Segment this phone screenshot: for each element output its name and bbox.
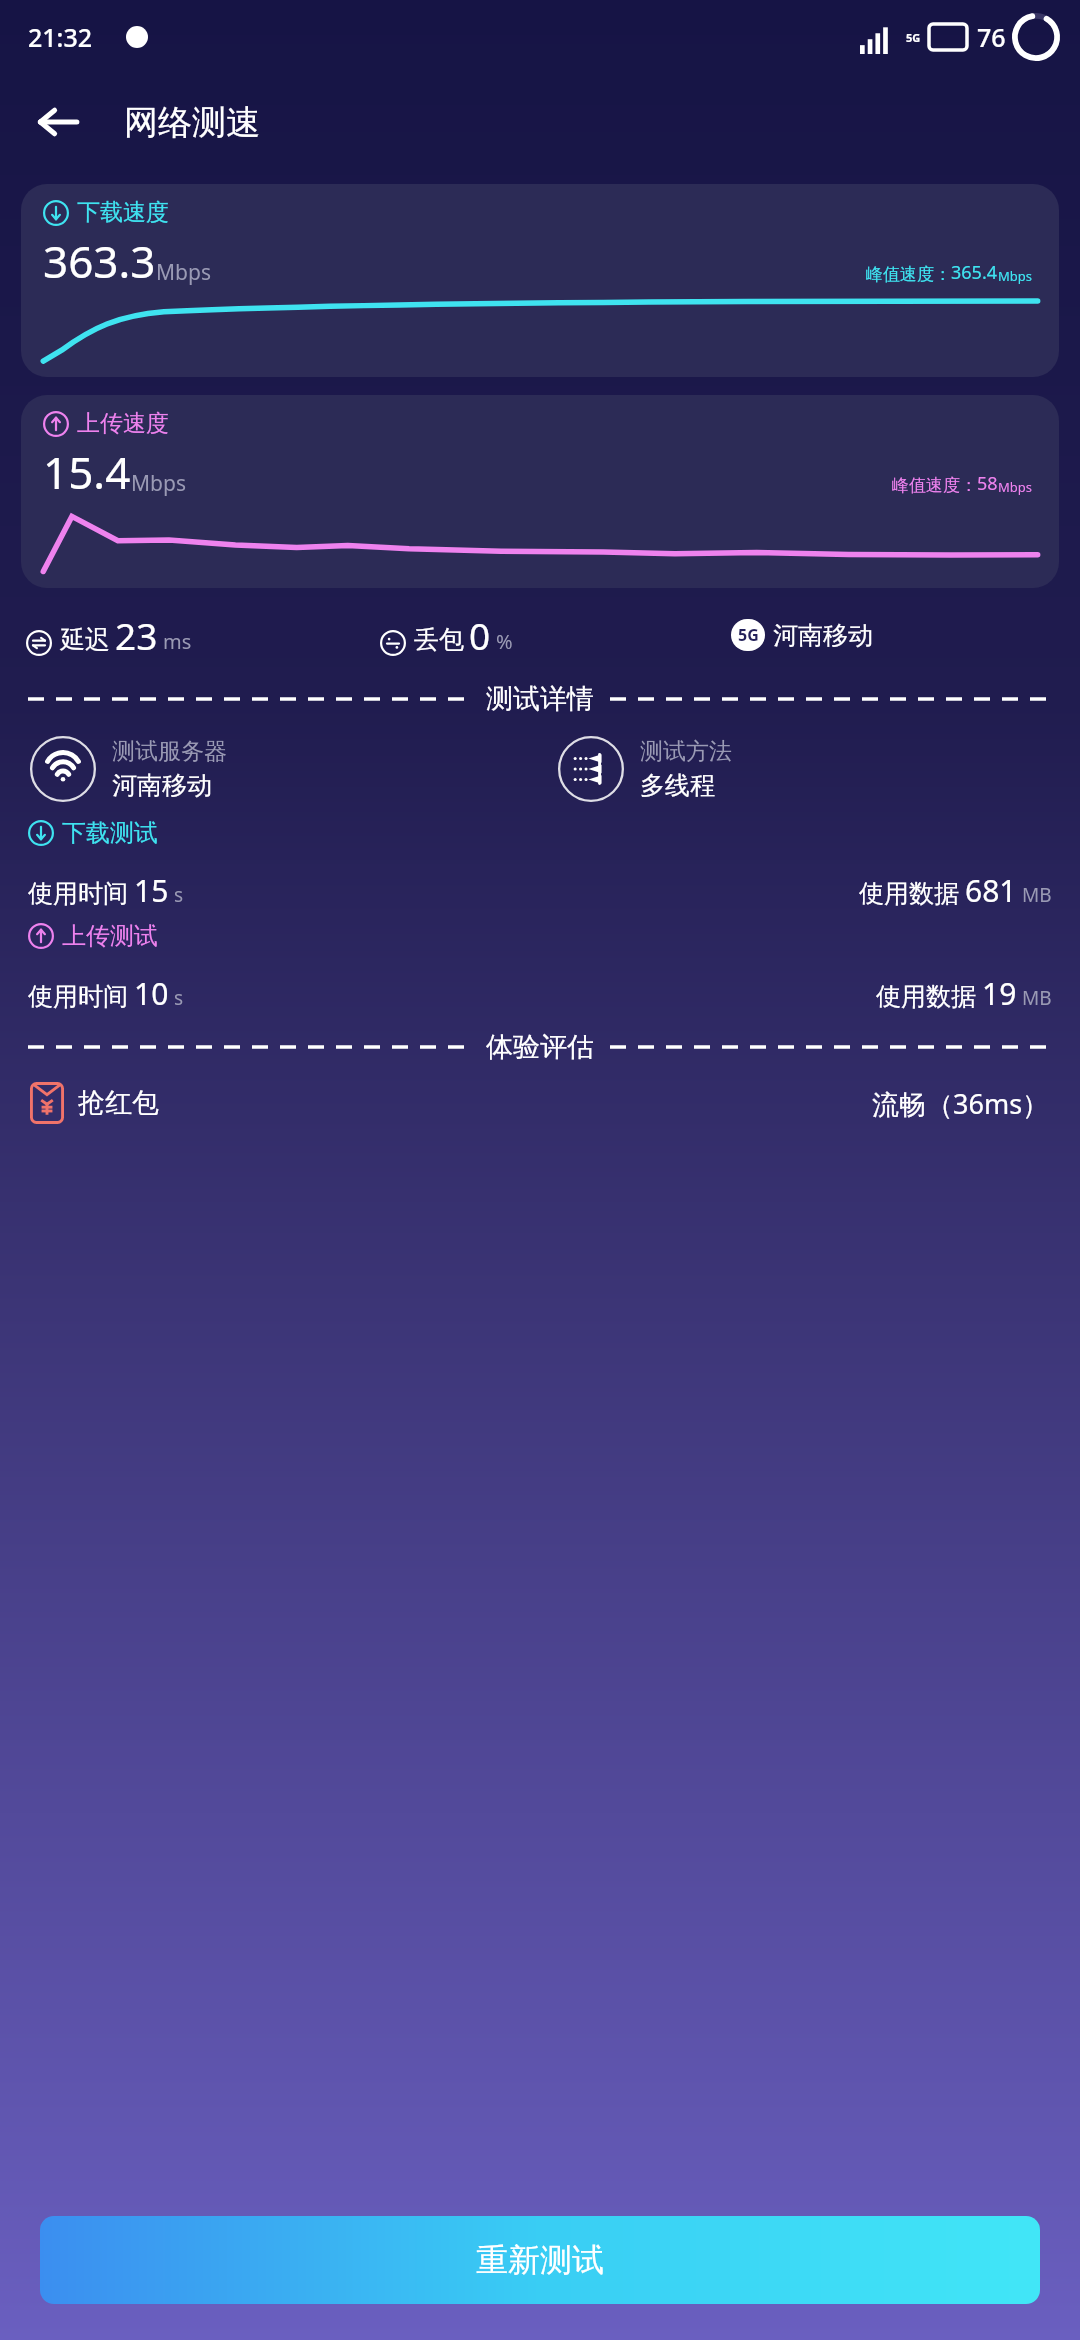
staticText: 使用数据	[876, 981, 976, 1012]
staticText: MB	[1022, 882, 1052, 908]
staticText: 网络测速	[124, 101, 260, 144]
staticText: 使用时间	[28, 878, 128, 909]
staticText: %	[496, 628, 513, 655]
staticText: 19	[982, 973, 1017, 1014]
staticText: 15	[134, 870, 169, 911]
button[interactable]: Back	[26, 90, 90, 154]
staticText: s	[174, 882, 184, 908]
staticText: 峰值速度：	[866, 264, 951, 285]
staticText: 0	[469, 610, 491, 660]
staticText: MB	[1022, 985, 1052, 1011]
button[interactable]: 重新测试	[40, 2216, 1040, 2304]
staticText: s	[174, 985, 184, 1011]
button[interactable]: 抢红包	[30, 1082, 1050, 1124]
staticText: 多线程	[640, 770, 715, 801]
staticText: 体验评估	[486, 1030, 594, 1064]
staticText: 重新测试	[476, 2240, 604, 2280]
staticText: 5G	[738, 624, 759, 646]
staticText: 使用时间	[28, 981, 128, 1012]
staticText: 河南移动	[773, 620, 873, 651]
staticText: 58	[977, 471, 998, 496]
staticText: 上传测试	[62, 921, 158, 951]
staticText: 上传速度	[77, 409, 169, 438]
staticText: 使用数据	[859, 878, 959, 909]
staticText: 10	[134, 973, 169, 1014]
staticText: 流畅（36ms）	[872, 1085, 1050, 1122]
staticText: 延迟	[60, 624, 110, 655]
staticText: 76	[977, 20, 1006, 54]
staticText: ms	[163, 628, 192, 655]
staticText: 15.4	[43, 442, 131, 502]
staticText: 21:32	[28, 20, 93, 54]
staticText: Mbps	[156, 258, 211, 287]
staticText: 5G	[906, 30, 921, 45]
staticText: Mbps	[998, 478, 1033, 496]
button[interactable]: 上传速度	[21, 395, 1059, 588]
staticText: Mbps	[131, 469, 186, 498]
staticText: 测试方法	[640, 737, 732, 766]
staticText: 363.3	[43, 231, 156, 291]
staticText: 河南移动	[112, 770, 212, 801]
staticText: 365.4	[951, 260, 998, 285]
staticText: 测试服务器	[112, 737, 227, 766]
staticText: 下载速度	[77, 198, 169, 227]
staticText: 测试详情	[486, 682, 594, 716]
staticText: 峰值速度：	[892, 475, 977, 496]
button[interactable]: 下载速度	[21, 184, 1059, 377]
staticText: 丢包	[414, 624, 464, 655]
staticText: Mbps	[998, 267, 1033, 285]
staticText: 抢红包	[78, 1086, 159, 1120]
staticText: 681	[965, 870, 1017, 911]
staticText: 下载测试	[62, 818, 158, 848]
staticText: 23	[115, 610, 158, 660]
